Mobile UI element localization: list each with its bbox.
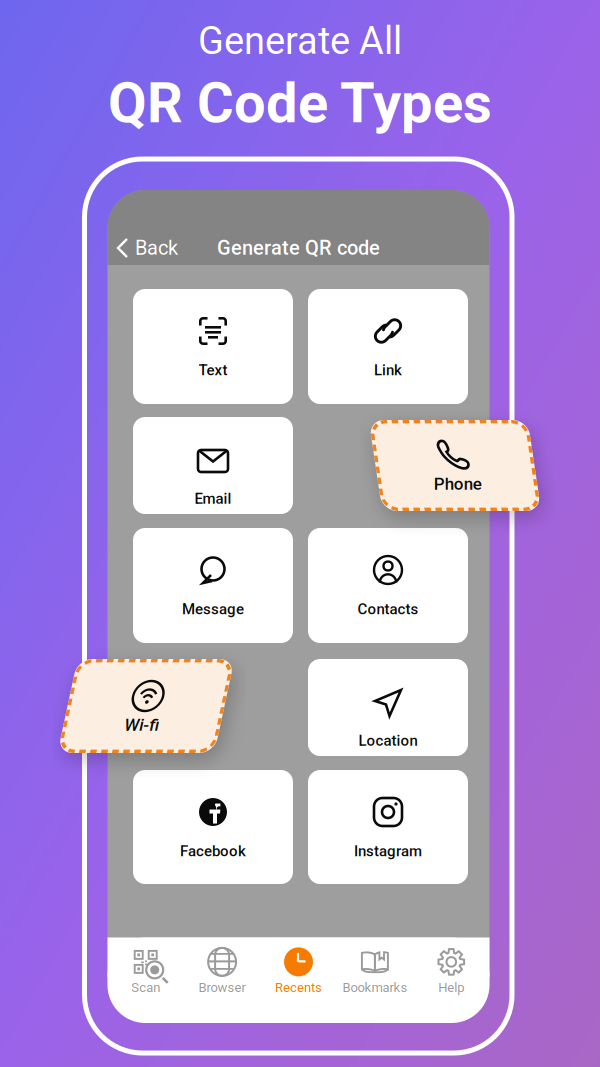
button[interactable]: Instagram bbox=[308, 770, 468, 884]
staticText: Wi-fi bbox=[128, 715, 163, 735]
button[interactable]: Email bbox=[133, 417, 293, 514]
staticText: Generate All bbox=[198, 19, 402, 63]
staticText: Recents bbox=[275, 980, 322, 995]
staticText: Back bbox=[135, 236, 178, 260]
button[interactable]: Help bbox=[413, 944, 489, 998]
staticText: Scan bbox=[131, 980, 160, 995]
button[interactable]: Facebook bbox=[133, 770, 293, 884]
staticText: Contacts bbox=[357, 600, 418, 618]
staticText: QR Code Types bbox=[108, 70, 492, 136]
button[interactable]: Location bbox=[308, 659, 468, 756]
button[interactable]: Link bbox=[308, 289, 468, 404]
staticText: Location bbox=[358, 732, 417, 749]
button[interactable]: Browser bbox=[184, 944, 260, 998]
button[interactable]: Text bbox=[133, 289, 293, 404]
button[interactable]: Contacts bbox=[308, 528, 468, 643]
button[interactable]: Scan bbox=[107, 944, 184, 998]
button[interactable]: Wi-fi bbox=[67, 659, 224, 753]
button[interactable]: Phone bbox=[375, 420, 534, 511]
staticText: Message bbox=[182, 600, 244, 618]
staticText: Text bbox=[198, 361, 227, 379]
staticText: Link bbox=[374, 361, 402, 379]
staticText: Instagram bbox=[354, 842, 422, 860]
staticText: Email bbox=[194, 490, 231, 507]
staticText: Phone bbox=[431, 474, 479, 494]
staticText: Help bbox=[438, 980, 464, 995]
button[interactable]: Back bbox=[117, 234, 212, 262]
staticText: Generate QR code bbox=[217, 236, 380, 260]
button[interactable]: Recents bbox=[260, 944, 337, 998]
button[interactable]: Message bbox=[133, 528, 293, 643]
staticText: Browser bbox=[199, 980, 246, 995]
staticText: Bookmarks bbox=[342, 980, 407, 995]
staticText: Facebook bbox=[180, 842, 246, 860]
button[interactable]: Bookmarks bbox=[337, 944, 413, 998]
